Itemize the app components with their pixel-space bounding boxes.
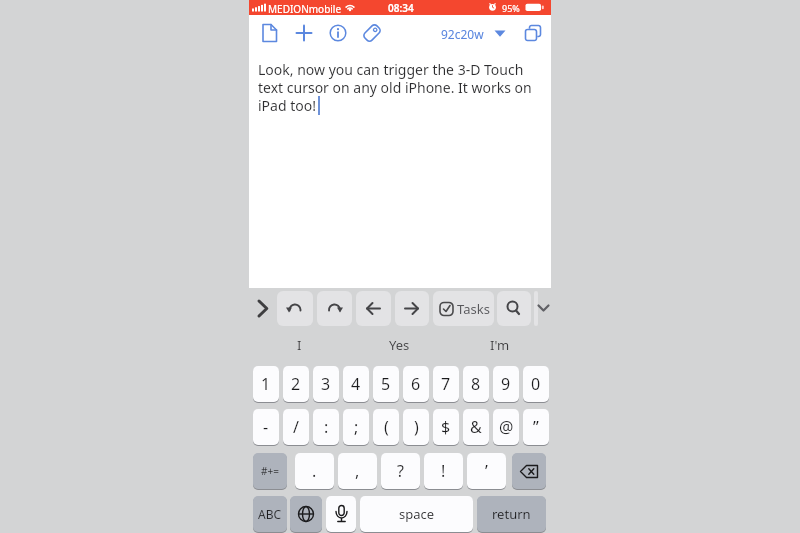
staticText: 9 xyxy=(501,373,511,395)
staticText: #+= xyxy=(261,464,279,478)
staticText: & xyxy=(470,416,482,438)
staticText: 1 xyxy=(261,373,271,395)
staticText: Look, now you can trigger the 3-D Touch … xyxy=(258,60,532,115)
button[interactable] xyxy=(512,453,546,489)
staticText: @ xyxy=(499,416,514,438)
button[interactable] xyxy=(326,20,350,46)
button[interactable] xyxy=(534,291,538,326)
staticText: - xyxy=(263,416,269,438)
button[interactable]: I'm xyxy=(453,332,546,358)
button[interactable]: Yes xyxy=(353,332,446,358)
button[interactable] xyxy=(395,291,429,326)
button[interactable]: : xyxy=(313,409,339,445)
staticText: ABC xyxy=(258,506,282,522)
staticText: MEDIONmobile xyxy=(268,2,342,16)
button[interactable]: Tasks xyxy=(433,291,494,326)
button[interactable] xyxy=(356,291,391,326)
button[interactable]: ? xyxy=(381,453,420,489)
button[interactable]: #+= xyxy=(253,453,287,489)
button[interactable]: 92c20w xyxy=(438,20,508,46)
button[interactable]: ! xyxy=(424,453,463,489)
staticText: 4 xyxy=(351,373,361,395)
staticText: ” xyxy=(533,416,539,438)
staticText: ? xyxy=(397,460,404,482)
staticText: : xyxy=(324,416,329,438)
button[interactable]: 8 xyxy=(463,366,489,402)
staticText: 6 xyxy=(411,373,421,395)
button[interactable]: - xyxy=(253,409,279,445)
staticText: 8 xyxy=(471,373,481,395)
button[interactable]: 3 xyxy=(313,366,339,402)
staticText: 95% xyxy=(502,2,520,14)
button[interactable] xyxy=(520,20,546,46)
staticText: 08:34 xyxy=(388,1,414,15)
button[interactable]: 5 xyxy=(373,366,399,402)
button[interactable]: ) xyxy=(403,409,429,445)
staticText: Yes xyxy=(389,336,410,354)
staticText: ; xyxy=(354,416,359,438)
staticText: ( xyxy=(384,416,389,438)
staticText: 5 xyxy=(381,373,391,395)
button[interactable]: @ xyxy=(493,409,519,445)
button[interactable] xyxy=(317,291,352,326)
button[interactable]: space xyxy=(360,496,473,532)
button[interactable] xyxy=(254,294,274,323)
button[interactable]: 2 xyxy=(283,366,309,402)
button[interactable]: ’ xyxy=(467,453,506,489)
button[interactable]: I xyxy=(253,332,346,358)
staticText: I'm xyxy=(490,336,510,354)
button[interactable]: ( xyxy=(373,409,399,445)
button[interactable] xyxy=(258,20,282,46)
staticText: return xyxy=(492,505,531,523)
staticText: ’ xyxy=(485,460,488,482)
button[interactable] xyxy=(277,291,313,326)
button[interactable]: 9 xyxy=(493,366,519,402)
staticText: space xyxy=(399,505,435,523)
staticText: 2 xyxy=(291,373,301,395)
staticText: I xyxy=(297,336,302,354)
button[interactable] xyxy=(290,496,322,532)
staticText: Tasks xyxy=(457,300,490,318)
staticText: / xyxy=(293,416,299,438)
button[interactable]: 6 xyxy=(403,366,429,402)
button[interactable]: $ xyxy=(433,409,459,445)
button[interactable] xyxy=(326,496,356,532)
staticText: $ xyxy=(441,416,451,438)
button[interactable]: 1 xyxy=(253,366,279,402)
button[interactable]: return xyxy=(477,496,546,532)
button[interactable] xyxy=(536,296,551,320)
button[interactable]: & xyxy=(463,409,489,445)
staticText: , xyxy=(355,460,360,482)
button[interactable]: 4 xyxy=(343,366,369,402)
staticText: . xyxy=(312,460,317,482)
button[interactable]: / xyxy=(283,409,309,445)
staticText: 7 xyxy=(441,373,451,395)
staticText: ) xyxy=(414,416,419,438)
button[interactable]: , xyxy=(338,453,377,489)
staticText: 0 xyxy=(531,373,541,395)
staticText: 3 xyxy=(321,373,331,395)
button[interactable]: 7 xyxy=(433,366,459,402)
button[interactable]: ; xyxy=(343,409,369,445)
button[interactable]: 0 xyxy=(523,366,549,402)
button[interactable] xyxy=(292,20,316,46)
button[interactable] xyxy=(497,291,531,326)
button[interactable] xyxy=(360,20,384,46)
staticText: ! xyxy=(441,460,446,482)
button[interactable]: ABC xyxy=(253,496,287,532)
button[interactable]: . xyxy=(295,453,334,489)
button[interactable]: ” xyxy=(523,409,549,445)
staticText: 92c20w xyxy=(441,26,484,42)
